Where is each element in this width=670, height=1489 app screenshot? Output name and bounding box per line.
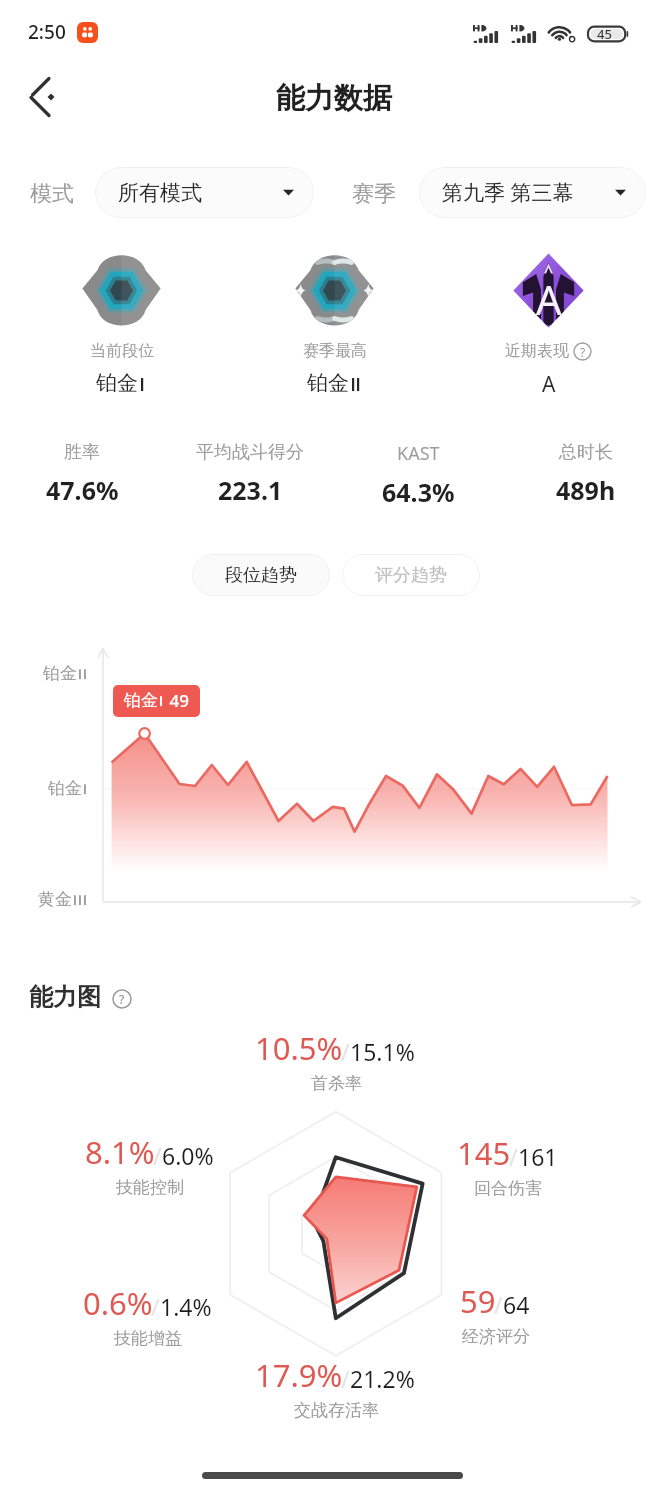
staticText: 平均战斗得分 bbox=[196, 441, 304, 464]
staticText: 当前段位 bbox=[90, 341, 154, 361]
staticText: 所有模式 bbox=[118, 180, 202, 206]
staticText: ? bbox=[119, 991, 125, 1007]
staticText: / bbox=[341, 1036, 350, 1067]
staticText: 0.6% bbox=[83, 1282, 153, 1324]
staticText: A bbox=[536, 272, 562, 326]
staticText: 2:50 bbox=[28, 19, 66, 45]
staticText: 首杀率 bbox=[311, 1073, 362, 1094]
staticText: 161 bbox=[518, 1141, 558, 1172]
staticText: 17.9% bbox=[255, 1354, 343, 1396]
staticText: 技能控制 bbox=[116, 1177, 184, 1198]
staticText: 铂金 bbox=[124, 690, 158, 711]
staticText: KAST bbox=[397, 441, 440, 466]
staticText: / bbox=[341, 1363, 350, 1394]
button[interactable]: Back bbox=[14, 70, 66, 124]
staticText: 经济评分 bbox=[462, 1326, 530, 1347]
staticText: 胜率 bbox=[64, 441, 100, 464]
staticText: 铂金 bbox=[48, 778, 82, 799]
staticText: 评分趋势 bbox=[375, 564, 447, 587]
staticText: 技能增益 bbox=[114, 1328, 182, 1349]
button[interactable]: 第九季 第三幕 bbox=[419, 167, 646, 218]
button[interactable]: Help bbox=[112, 989, 132, 1009]
staticText: 45 bbox=[597, 25, 612, 43]
staticText: / bbox=[494, 1289, 503, 1320]
staticText: 59 bbox=[460, 1280, 496, 1322]
staticText: 黄金 bbox=[38, 889, 72, 910]
staticText: 1.4% bbox=[160, 1291, 212, 1322]
staticText: 能力图 bbox=[29, 982, 101, 1012]
staticText: ? bbox=[580, 344, 586, 360]
staticText: 489h bbox=[556, 473, 616, 507]
staticText: 223.1 bbox=[218, 473, 283, 507]
button[interactable]: 段位趋势 bbox=[192, 554, 330, 596]
button[interactable]: 所有模式 bbox=[95, 167, 314, 218]
staticText: 近期表现 bbox=[505, 341, 569, 361]
staticText: A bbox=[542, 370, 556, 399]
staticText: 10.5% bbox=[255, 1027, 343, 1069]
staticText: 64 bbox=[503, 1289, 530, 1320]
staticText: / bbox=[151, 1291, 160, 1322]
staticText: 6.0% bbox=[162, 1140, 214, 1171]
staticText: 64.3% bbox=[382, 475, 455, 509]
staticText: 8.1% bbox=[85, 1131, 155, 1173]
staticText: 铂金 bbox=[43, 663, 77, 684]
staticText: 赛季最高 bbox=[303, 341, 367, 361]
staticText: 总时长 bbox=[559, 441, 613, 464]
staticText: 交战存活率 bbox=[294, 1400, 379, 1421]
staticText: 第九季 第三幕 bbox=[442, 178, 574, 207]
staticText: 赛季 bbox=[352, 180, 396, 208]
staticText: 铂金 bbox=[307, 370, 349, 396]
button[interactable]: 评分趋势 bbox=[342, 554, 480, 596]
staticText: 21.2% bbox=[350, 1363, 415, 1394]
staticText: 145 bbox=[457, 1132, 511, 1174]
staticText: 能力数据 bbox=[276, 80, 392, 117]
staticText: / bbox=[509, 1141, 518, 1172]
staticText: 段位趋势 bbox=[225, 564, 297, 587]
staticText: 回合伤害 bbox=[474, 1178, 542, 1199]
staticText: / bbox=[153, 1140, 162, 1171]
staticText: 49 bbox=[165, 689, 189, 712]
staticText: 15.1% bbox=[350, 1036, 415, 1067]
staticText: 铂金 bbox=[96, 370, 138, 396]
staticText: 模式 bbox=[30, 180, 74, 208]
staticText: 47.6% bbox=[46, 473, 119, 507]
